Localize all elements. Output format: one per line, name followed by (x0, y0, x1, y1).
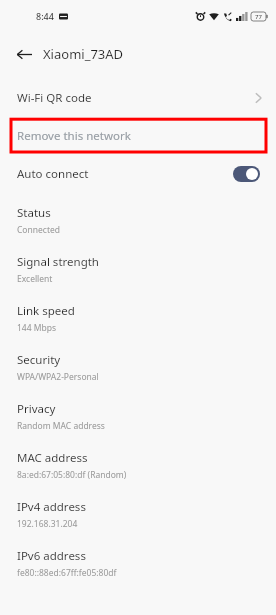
button[interactable]: Back (10, 40, 38, 68)
staticText: IPv4 address (17, 499, 86, 515)
staticText: Remove this network (17, 128, 131, 144)
staticText: 77 (255, 13, 262, 21)
staticText: Privacy (17, 401, 56, 417)
staticText: Status (17, 205, 51, 221)
staticText: Link speed (17, 303, 75, 319)
staticText: Signal strength (17, 254, 99, 270)
staticText: WPA/WPA2-Personal (17, 371, 99, 383)
button[interactable]: IPv4 address (0, 490, 276, 539)
button[interactable]: Signal strength (0, 245, 276, 294)
staticText: 8:44 (36, 10, 54, 22)
staticText: Auto connect (17, 166, 89, 182)
staticText: Xiaomi_73AD (43, 45, 124, 63)
button[interactable]: Privacy (0, 392, 276, 441)
staticText: fe80::88ed:67ff:fe05:80df (17, 567, 117, 579)
button[interactable]: Wi-Fi QR code (0, 80, 276, 116)
button[interactable]: Link speed (0, 294, 276, 343)
staticText: IPv6 address (17, 548, 86, 564)
staticText: 144 Mbps (17, 322, 57, 334)
staticText: Connected (17, 224, 60, 236)
staticText: Wi-Fi QR code (17, 90, 92, 106)
button[interactable]: Remove this network (0, 120, 276, 152)
button[interactable]: Auto connect (0, 156, 276, 192)
staticText: Security (17, 352, 61, 368)
button[interactable]: Status (0, 196, 276, 245)
staticText: MAC address (17, 450, 88, 466)
button[interactable]: MAC address (0, 441, 276, 490)
staticText: Random MAC address (17, 420, 105, 432)
staticText: Excellent (17, 273, 53, 285)
button[interactable]: IPv6 address (0, 539, 276, 588)
button[interactable]: Security (0, 343, 276, 392)
staticText: 8a:ed:67:05:80:df (Random) (17, 469, 127, 481)
staticText: 192.168.31.204 (17, 518, 78, 530)
